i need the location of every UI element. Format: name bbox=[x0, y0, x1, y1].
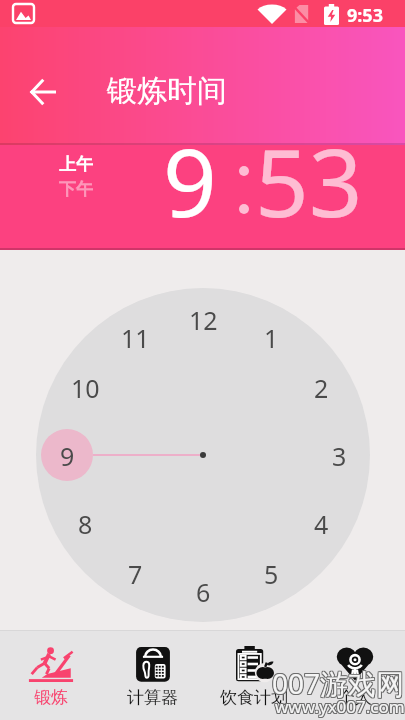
button[interactable]: 9 bbox=[163, 117, 217, 222]
staticText: www.yx007.com bbox=[275, 696, 405, 719]
staticText: 9 bbox=[163, 117, 217, 222]
staticText: www.yx007.com bbox=[275, 695, 405, 718]
button[interactable]: 个人 bbox=[304, 631, 405, 720]
button[interactable]: 10 bbox=[61, 371, 109, 403]
staticText: 锻炼时间 bbox=[107, 72, 227, 110]
staticText: 007游戏网 bbox=[272, 665, 405, 703]
staticText: 5 bbox=[264, 557, 279, 589]
button[interactable]: 锻炼 bbox=[0, 631, 102, 720]
button[interactable]: 计算器 bbox=[102, 631, 203, 720]
staticText: 4 bbox=[314, 507, 329, 539]
button[interactable]: 2 bbox=[297, 371, 345, 403]
staticText: 饮食计划 bbox=[220, 687, 288, 708]
button[interactable]: 3 bbox=[315, 439, 363, 471]
staticText: 锻炼 bbox=[34, 687, 68, 708]
staticText: www.yx007.com bbox=[274, 695, 404, 718]
staticText: www.yx007.com bbox=[276, 694, 405, 717]
button[interactable] bbox=[19, 68, 67, 116]
staticText: 007游戏网 bbox=[271, 663, 404, 701]
staticText: 8 bbox=[78, 507, 93, 539]
staticText: www.yx007.com bbox=[276, 695, 405, 718]
button[interactable]: 5 bbox=[247, 557, 295, 589]
staticText: 007游戏网 bbox=[271, 665, 404, 703]
staticText: 上午 bbox=[59, 154, 93, 175]
button[interactable]: 1 bbox=[247, 321, 295, 353]
staticText: 9 bbox=[60, 439, 75, 471]
button[interactable]: 8 bbox=[61, 507, 109, 539]
staticText: 53 bbox=[255, 117, 363, 222]
staticText: www.yx007.com bbox=[274, 694, 404, 717]
staticText: 2 bbox=[314, 371, 329, 403]
staticText: 11 bbox=[121, 321, 150, 353]
button[interactable]: 7 bbox=[111, 557, 159, 589]
button[interactable]: 9 bbox=[43, 439, 91, 471]
button[interactable]: 饮食计划 bbox=[203, 631, 304, 720]
staticText: 7 bbox=[128, 557, 143, 589]
staticText: 007游戏网 bbox=[273, 664, 405, 702]
staticText: www.yx007.com bbox=[275, 694, 405, 717]
staticText: 1 bbox=[264, 321, 279, 353]
staticText: 10 bbox=[71, 371, 100, 403]
staticText: 007游戏网 bbox=[272, 664, 405, 702]
button[interactable]: 4 bbox=[297, 507, 345, 539]
button[interactable]: 下午 bbox=[59, 179, 93, 200]
staticText: 下午 bbox=[59, 179, 93, 200]
button[interactable]: 53 bbox=[255, 117, 363, 222]
staticText: 007游戏网 bbox=[273, 665, 405, 703]
staticText: 007游戏网 bbox=[272, 663, 405, 701]
button[interactable]: 6 bbox=[179, 575, 227, 607]
staticText: 6 bbox=[196, 575, 211, 607]
button[interactable]: 12 bbox=[179, 303, 227, 335]
staticText: 9:53 bbox=[347, 3, 383, 28]
staticText: 个人 bbox=[338, 687, 372, 708]
staticText: 3 bbox=[332, 439, 347, 471]
button[interactable]: 上午 bbox=[59, 154, 93, 175]
staticText: 12 bbox=[189, 303, 218, 335]
button[interactable]: 11 bbox=[111, 321, 159, 353]
staticText: www.yx007.com bbox=[276, 696, 405, 719]
staticText: 007游戏网 bbox=[273, 663, 405, 701]
staticText: 计算器 bbox=[127, 687, 178, 708]
staticText: www.yx007.com bbox=[274, 696, 404, 719]
staticText: 007游戏网 bbox=[271, 664, 404, 702]
